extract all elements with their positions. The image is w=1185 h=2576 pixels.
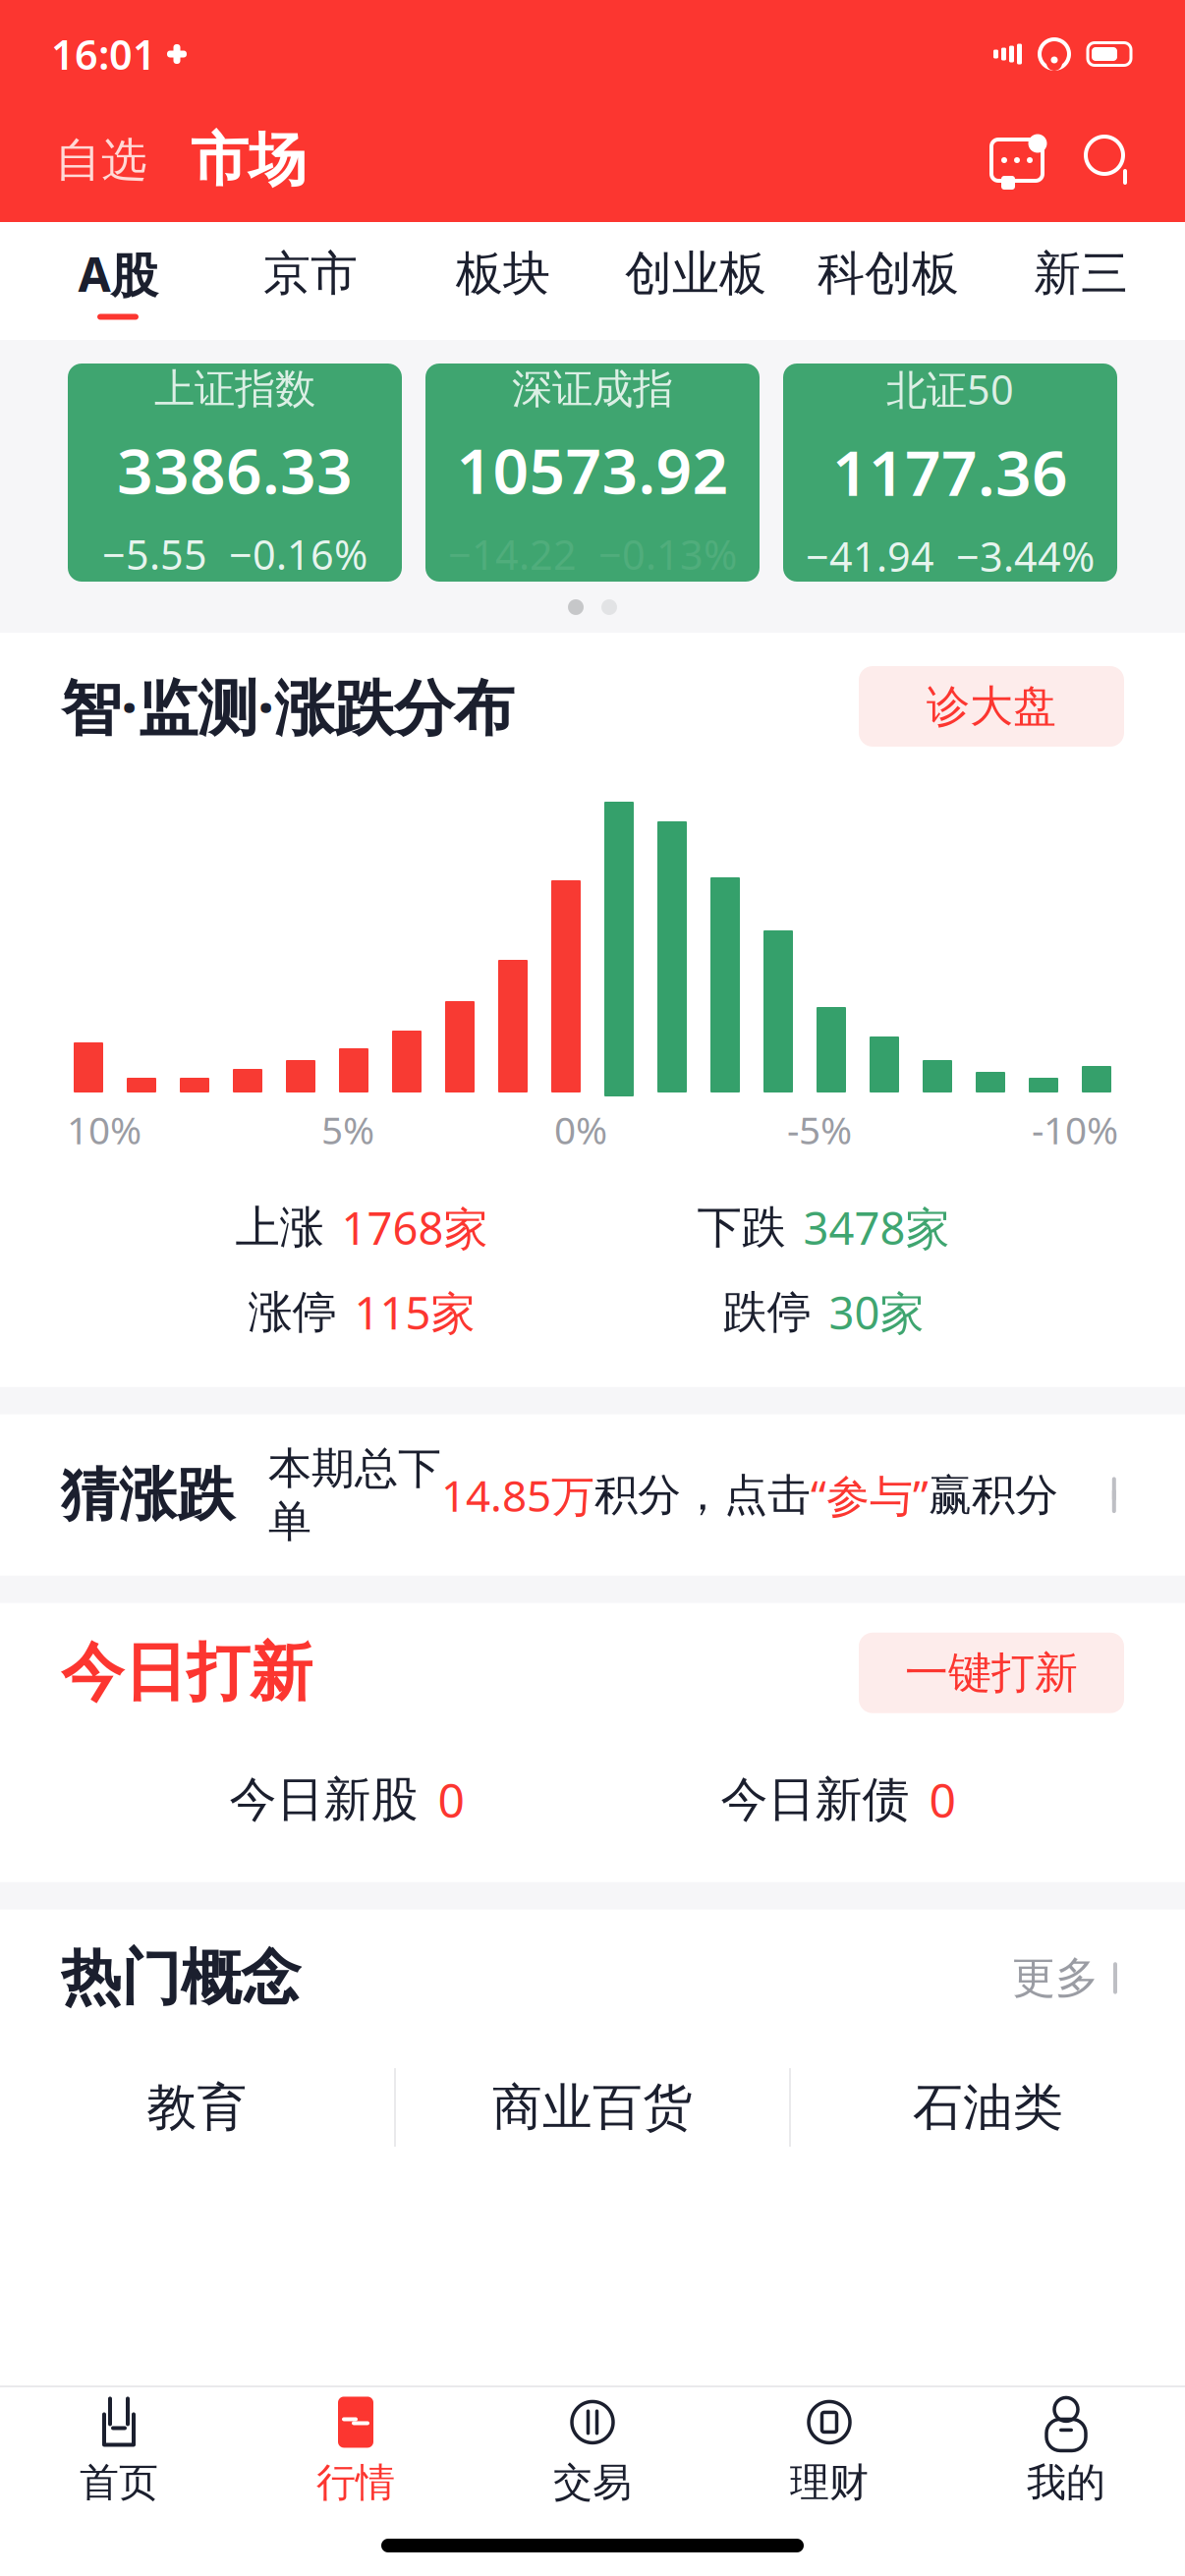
button[interactable]: A股 xyxy=(22,228,214,334)
staticText: 115家 xyxy=(354,1283,475,1342)
staticText: 0 xyxy=(438,1768,464,1831)
button[interactable]: 消息 xyxy=(981,129,1053,192)
staticText: A股 xyxy=(78,242,158,305)
button[interactable]: 更多 xyxy=(1012,1942,1124,2014)
button[interactable]: 创业板 xyxy=(599,231,792,331)
staticText: 热门概念 xyxy=(61,1941,301,2015)
staticText: 石油类 xyxy=(913,2077,1063,2138)
staticText: -5% xyxy=(787,1104,852,1155)
button[interactable]: 诊大盘 xyxy=(859,666,1124,747)
staticText: 交易 xyxy=(553,2458,632,2507)
staticText: 0 xyxy=(929,1768,956,1831)
button[interactable]: 上证指数 xyxy=(68,364,402,582)
staticText: 上涨 xyxy=(235,1200,324,1255)
button[interactable]: 北证50 xyxy=(783,364,1117,582)
staticText: 市场 xyxy=(191,125,307,196)
staticText: 诊大盘 xyxy=(927,680,1056,733)
staticText: 今日新股 xyxy=(229,1771,418,1829)
staticText: 智·监测·涨跌分布 xyxy=(61,666,514,746)
staticText: 本期总下单 xyxy=(268,1442,441,1548)
staticText: -10% xyxy=(1032,1104,1118,1155)
button[interactable]: 首页 xyxy=(0,2387,237,2515)
button[interactable]: 交易 xyxy=(474,2387,711,2515)
button[interactable]: 我的 xyxy=(948,2387,1185,2515)
button[interactable]: 新三 xyxy=(985,231,1177,331)
staticText: 10% xyxy=(67,1104,141,1155)
staticText: 跌停 xyxy=(723,1285,811,1340)
staticText: 创业板 xyxy=(625,245,766,303)
staticText: 涨停 xyxy=(248,1285,337,1340)
staticText: −41.94 −3.44% xyxy=(806,529,1095,583)
staticText: 16:01 xyxy=(51,27,156,81)
button[interactable]: 市场 xyxy=(179,121,318,200)
staticText: 今日打新 xyxy=(61,1634,312,1711)
staticText: 科创板 xyxy=(818,245,959,303)
staticText: 首页 xyxy=(80,2458,158,2507)
button[interactable]: 一键打新 xyxy=(859,1633,1124,1713)
button[interactable]: 搜索 xyxy=(1079,130,1140,191)
staticText: 我的 xyxy=(1027,2458,1105,2507)
staticText: 商业百货 xyxy=(492,2077,693,2138)
button[interactable]: 自选 xyxy=(45,124,157,196)
staticText: 更多 xyxy=(1012,1952,1099,2005)
staticText: 北证50 xyxy=(886,362,1014,416)
staticText: 猜涨跌 xyxy=(61,1460,235,1530)
staticText: 10573.92 xyxy=(456,428,729,511)
staticText: 30家 xyxy=(829,1283,924,1342)
button[interactable]: 商业百货 xyxy=(396,2060,789,2155)
button[interactable]: 科创板 xyxy=(792,231,985,331)
staticText: 3478家 xyxy=(803,1198,950,1257)
staticText: 0% xyxy=(554,1104,607,1155)
staticText: 赢积分 xyxy=(929,1468,1058,1522)
staticText: 自选 xyxy=(55,132,147,188)
button[interactable]: 行情 xyxy=(237,2387,474,2515)
staticText: 今日新债 xyxy=(721,1771,909,1829)
staticText: 1768家 xyxy=(341,1198,488,1257)
button[interactable]: 理财 xyxy=(711,2387,948,2515)
button[interactable]: 教育 xyxy=(0,2060,394,2155)
staticText: 深证成指 xyxy=(512,364,673,414)
staticText: 京市 xyxy=(263,245,358,303)
button[interactable]: 石油类 xyxy=(791,2060,1185,2155)
staticText: −14.22 −0.13% xyxy=(448,527,737,581)
button[interactable]: 板块 xyxy=(407,231,599,331)
staticText: 板块 xyxy=(456,245,550,303)
staticText: 积分，点击 xyxy=(594,1468,811,1522)
staticText: 行情 xyxy=(316,2458,395,2507)
staticText: 理财 xyxy=(790,2458,869,2507)
staticText: 一键打新 xyxy=(905,1646,1078,1699)
button[interactable]: 深证成指 xyxy=(425,364,760,582)
staticText: 14.85万 xyxy=(441,1466,594,1524)
staticText: 1177.36 xyxy=(832,430,1068,513)
staticText: −5.55 −0.16% xyxy=(102,527,367,581)
staticText: 下跌 xyxy=(697,1200,786,1255)
staticText: 教育 xyxy=(147,2077,247,2138)
staticText: 5% xyxy=(321,1104,374,1155)
staticText: 3386.33 xyxy=(117,428,353,511)
button[interactable]: 今日新股 xyxy=(101,1760,592,1839)
button[interactable]: 京市 xyxy=(214,231,407,331)
button[interactable]: 今日新债 xyxy=(592,1760,1084,1839)
button[interactable]: 猜涨跌 xyxy=(0,1414,1185,1576)
staticText: 新三 xyxy=(1034,245,1128,303)
staticText: “参与” xyxy=(811,1466,929,1524)
staticText: 上证指数 xyxy=(154,364,315,414)
